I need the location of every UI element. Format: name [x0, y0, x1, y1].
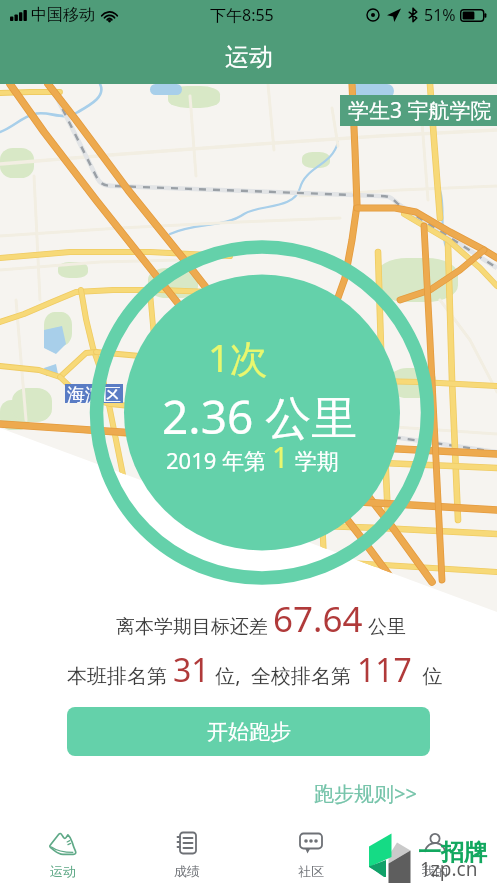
button[interactable]: 开始跑步 [67, 707, 430, 756]
staticText: 运动 [50, 863, 76, 879]
staticText: 1 [272, 437, 289, 476]
staticText: 我的 [422, 863, 448, 879]
staticText: 跑步规则>> [314, 780, 417, 807]
staticText: 1次 [208, 331, 268, 383]
staticText: 本班排名第 [67, 662, 173, 689]
button[interactable]: 海淀区 [65, 384, 123, 403]
staticText: 2.36 公里 [162, 385, 358, 448]
button[interactable]: 社区 [249, 823, 373, 883]
staticText: 下午8:55 [210, 4, 274, 26]
button[interactable]: 成绩 [125, 823, 249, 883]
staticText: 学生3 宇航学院 [348, 96, 492, 125]
staticText: 位 [412, 662, 443, 689]
button[interactable]: 学生3 宇航学院 [340, 95, 497, 126]
staticText: 2019 年第 [166, 445, 272, 475]
staticText: 位, 全校排名第 [210, 662, 357, 689]
staticText: 离本学期目标还差 [116, 613, 273, 639]
button[interactable]: 我的 [373, 823, 497, 883]
staticText: 运动 [225, 42, 273, 72]
staticText: 海淀区 [67, 384, 121, 403]
staticText: 一招牌 [418, 838, 487, 867]
staticText: 开始跑步 [207, 719, 291, 745]
staticText: 1zp.cn [420, 856, 478, 882]
staticText: 117 [357, 648, 412, 692]
button[interactable]: 跑步规则>> [314, 780, 417, 807]
staticText: 51% [424, 4, 456, 26]
staticText: 学期 [289, 445, 339, 475]
staticText: 67.64 [273, 595, 363, 643]
staticText: 公里 [363, 613, 406, 639]
staticText: 31 [173, 648, 210, 692]
staticText: 成绩 [174, 863, 200, 879]
staticText: 社区 [298, 863, 324, 879]
staticText: 中国移动 [31, 5, 95, 25]
button[interactable]: 运动 [0, 823, 125, 883]
